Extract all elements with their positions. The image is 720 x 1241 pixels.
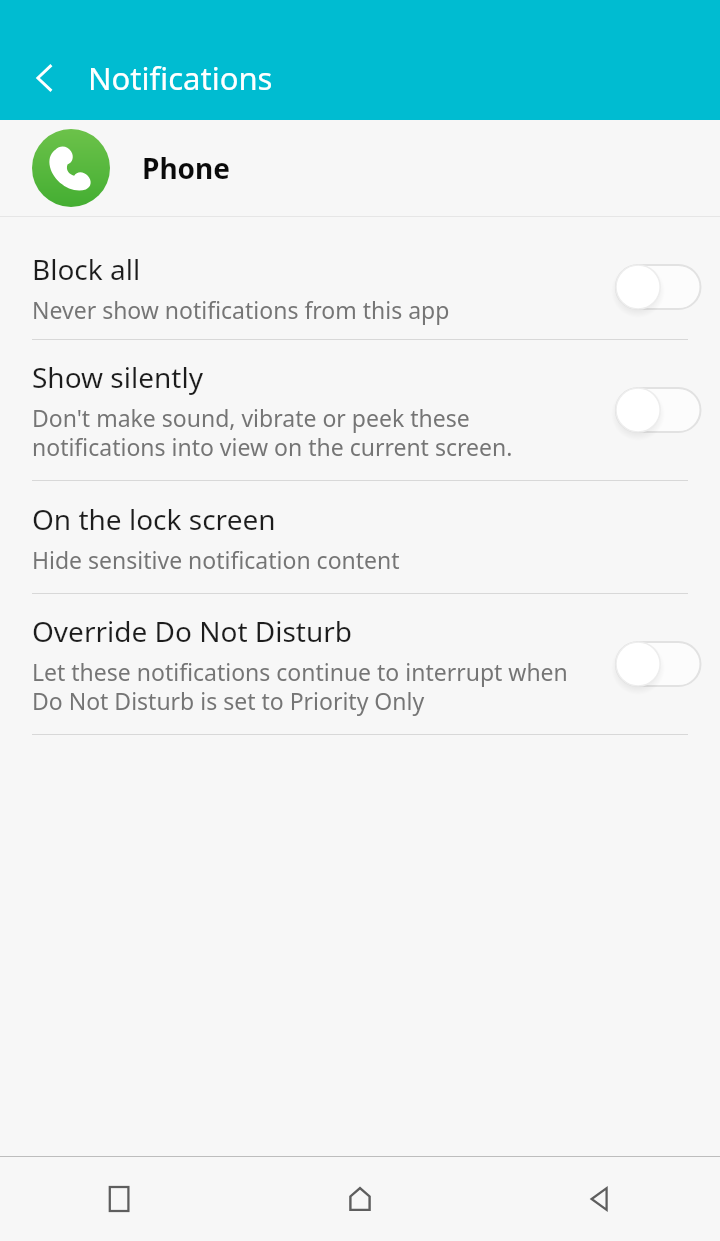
staticText: Phone	[142, 149, 231, 187]
button[interactable]: On the lock screen	[0, 481, 720, 593]
button[interactable]: Back	[480, 1157, 720, 1241]
button[interactable]: Phone	[0, 120, 720, 216]
button[interactable]: Block all	[600, 235, 720, 339]
button[interactable]: Override Do Not Disturb	[600, 594, 720, 734]
button[interactable]: Back	[18, 50, 74, 106]
button[interactable]: Override Do Not Disturb	[0, 594, 720, 734]
button[interactable]: Home	[240, 1157, 480, 1241]
button[interactable]: Block all	[0, 235, 720, 339]
staticText: Show silently	[32, 358, 203, 396]
staticText: On the lock screen	[32, 500, 276, 538]
staticText: Let these notifications continue to inte…	[32, 656, 568, 717]
staticText: Block all	[32, 250, 141, 288]
button[interactable]: Show silently	[0, 340, 720, 480]
staticText: Never show notifications from this app	[32, 294, 450, 325]
button[interactable]: Show silently	[600, 340, 720, 480]
staticText: Override Do Not Disturb	[32, 612, 353, 650]
staticText: Don't make sound, vibrate or peek these …	[32, 402, 513, 463]
staticText: Notifications	[88, 57, 273, 99]
button[interactable]: Recents	[0, 1157, 240, 1241]
staticText: Hide sensitive notification content	[32, 544, 400, 575]
